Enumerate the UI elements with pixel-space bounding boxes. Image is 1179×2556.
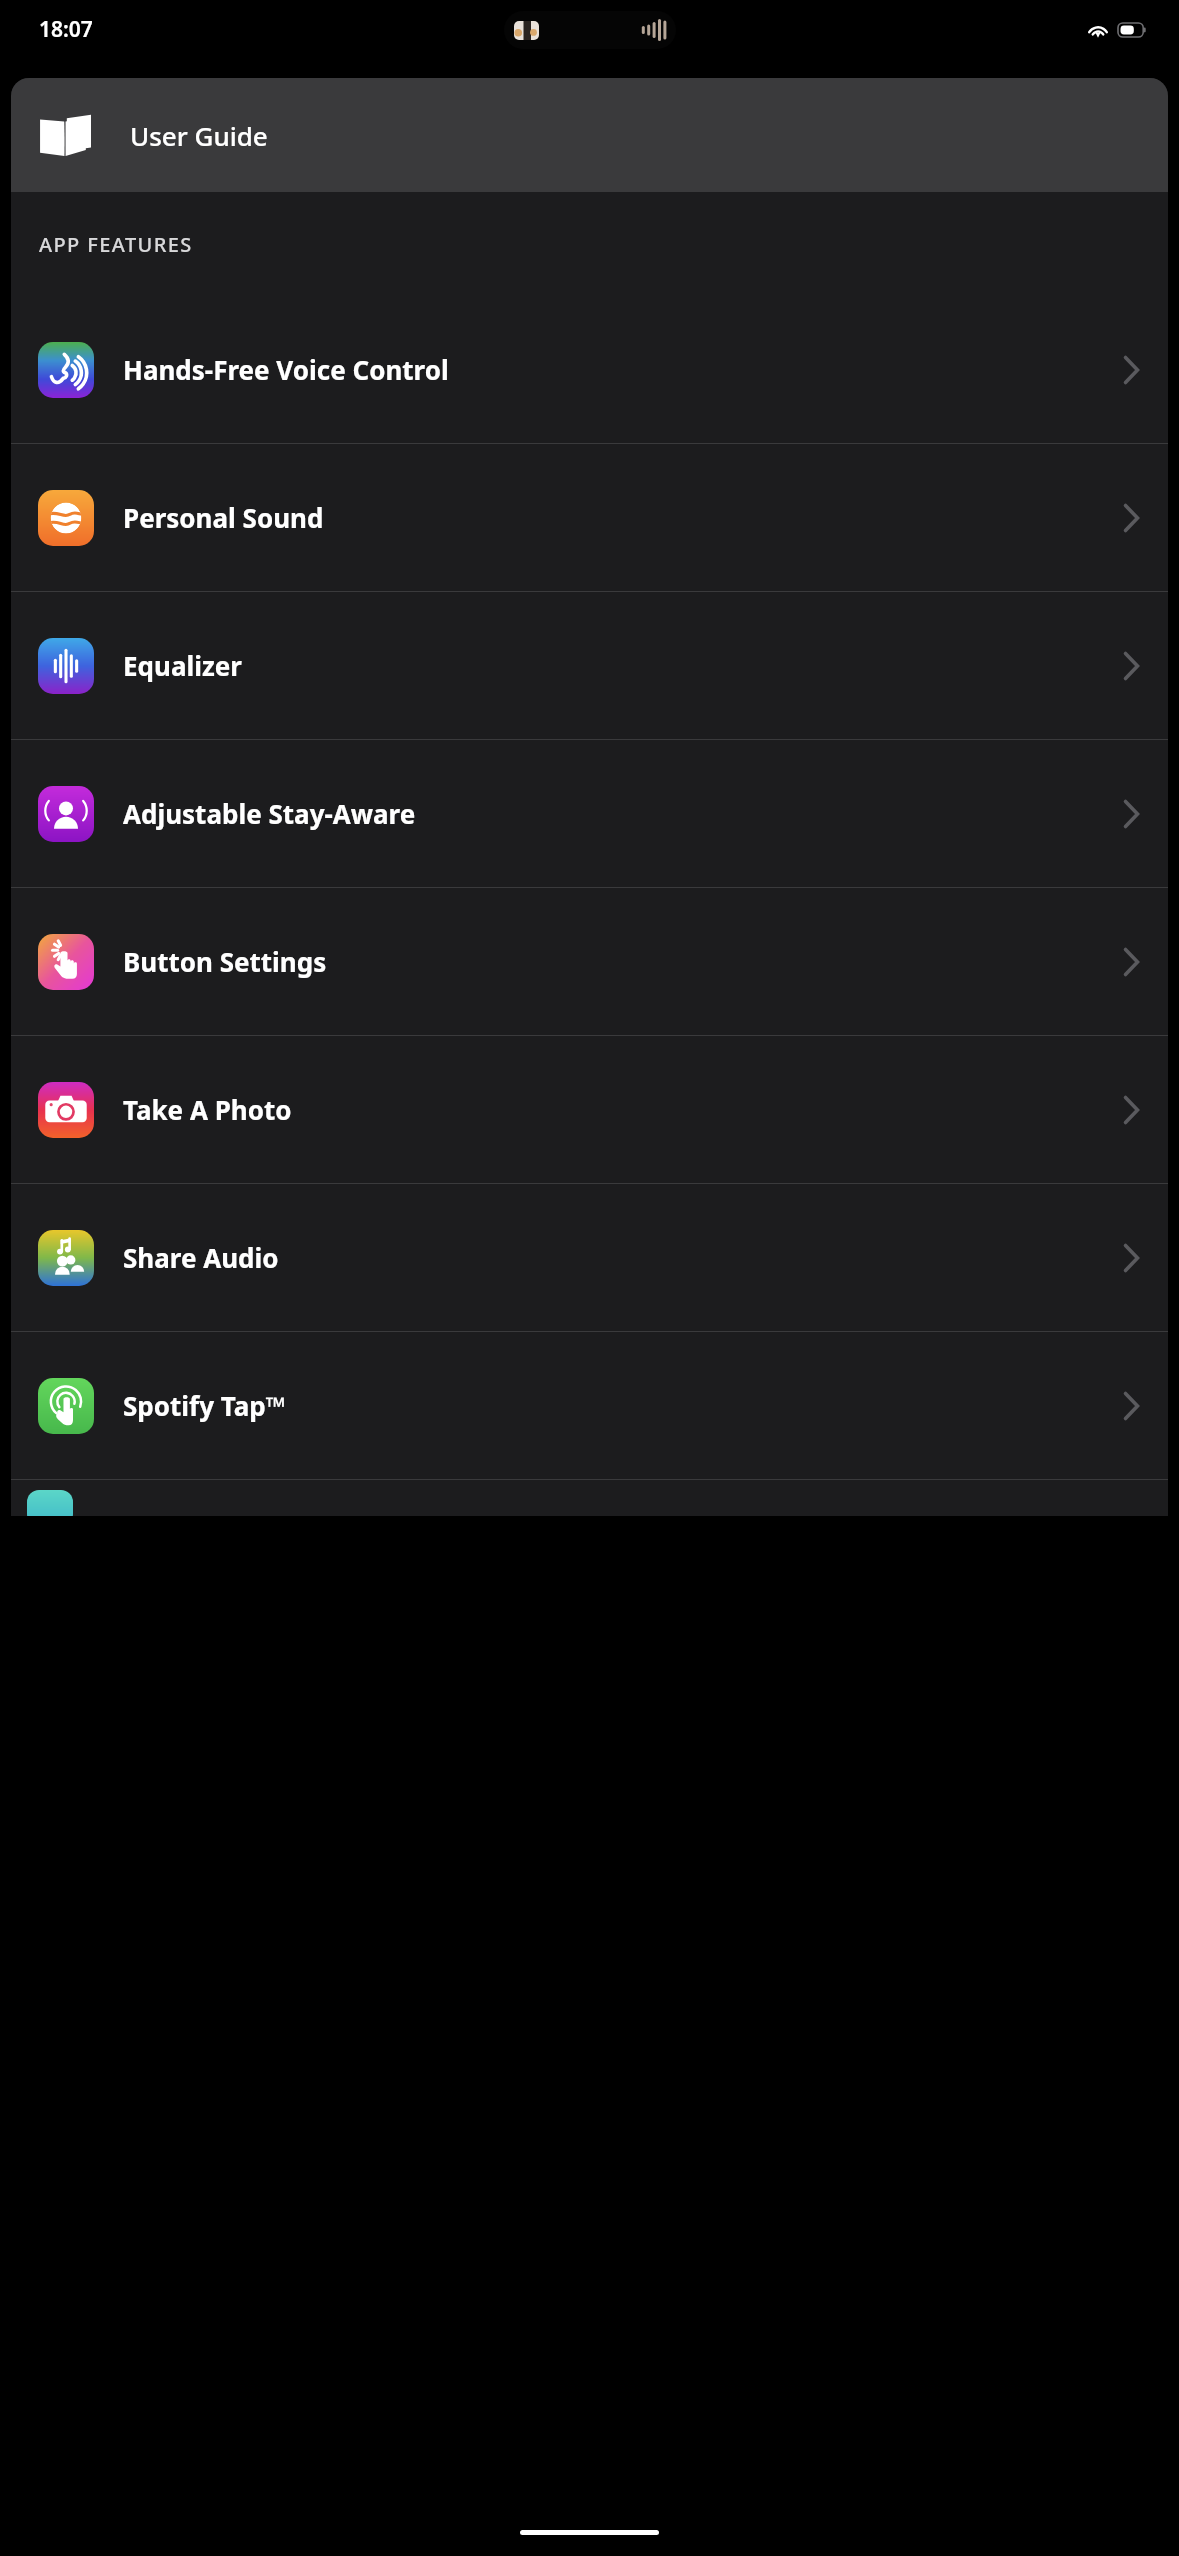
button[interactable]: Spotify Tap™ — [11, 1332, 1168, 1479]
button[interactable]: Hands-Free Voice Control — [11, 296, 1168, 443]
button[interactable]: User Guide — [11, 78, 1168, 192]
staticText: Share Audio — [123, 1240, 1123, 1275]
staticText: User Guide — [130, 118, 268, 153]
button[interactable]: Share Audio — [11, 1184, 1168, 1331]
staticText: Take A Photo — [123, 1092, 1123, 1127]
button[interactable]: Equalizer — [11, 592, 1168, 739]
staticText: Equalizer — [123, 648, 1123, 683]
button[interactable]: Button Settings — [11, 888, 1168, 1035]
staticText: Personal Sound — [123, 500, 1123, 535]
staticText: Adjustable Stay-Aware — [123, 796, 1123, 831]
staticText: 18:07 — [39, 15, 93, 44]
button[interactable]: Personal Sound — [11, 444, 1168, 591]
staticText: Button Settings — [123, 944, 1123, 979]
button[interactable]: Adjustable Stay-Aware — [11, 740, 1168, 887]
staticText: Spotify Tap™ — [123, 1388, 1123, 1423]
staticText: APP FEATURES — [39, 231, 193, 258]
staticText: Hands-Free Voice Control — [123, 352, 1123, 387]
button[interactable]: Take A Photo — [11, 1036, 1168, 1183]
